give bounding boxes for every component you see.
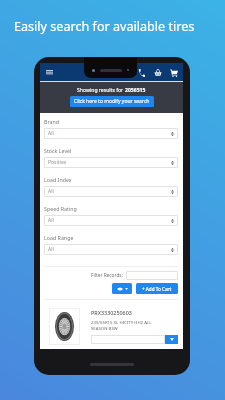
staticText: All (48, 217, 54, 224)
button[interactable]: Cart (170, 68, 178, 77)
staticText: 235/65R15 XL HICITY HH2 ALL SEASON BSW (91, 319, 152, 332)
staticText: All (48, 130, 54, 137)
staticText: All (48, 188, 54, 195)
button[interactable]: All (44, 244, 178, 255)
button[interactable]: All (44, 128, 178, 139)
staticText: Brand (44, 118, 60, 125)
staticText: Showing results for (77, 87, 125, 94)
button[interactable]: All (44, 215, 178, 226)
staticText: PRX3330250603 (91, 309, 132, 316)
staticText: Click here to modify your search (74, 98, 150, 105)
staticText: Stock Level (44, 147, 72, 154)
staticText: All (48, 246, 54, 253)
button[interactable]: Positive (44, 157, 178, 168)
staticText: Easily search for available tires (14, 18, 195, 35)
staticText: Positive (48, 159, 67, 166)
staticText: Filter Records: (91, 272, 123, 279)
button[interactable]: View options (112, 283, 132, 294)
button[interactable]: Click here to modify your search (70, 96, 154, 107)
staticText: 2056515 (125, 87, 146, 94)
button[interactable]: Expand (165, 335, 178, 344)
button[interactable]: Menu (45, 69, 54, 76)
staticText: Speed Rating (44, 205, 77, 212)
button[interactable] (126, 271, 178, 280)
staticText: Load Index (44, 176, 72, 183)
staticText: + Add To Cart (142, 286, 172, 292)
staticText: Load Range (44, 234, 74, 241)
button[interactable]: Call (138, 68, 145, 77)
button[interactable]: All (44, 186, 178, 197)
button[interactable]: + Add To Cart (136, 283, 178, 294)
button[interactable] (91, 335, 165, 344)
button[interactable]: Basket (154, 68, 162, 77)
